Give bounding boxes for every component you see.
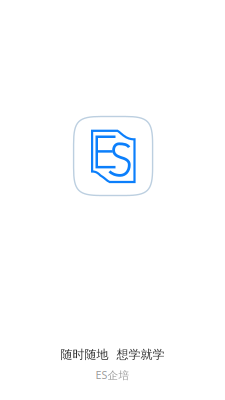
staticText: 随时随地 想学就学: [60, 347, 164, 362]
staticText: ES企培: [95, 368, 129, 382]
